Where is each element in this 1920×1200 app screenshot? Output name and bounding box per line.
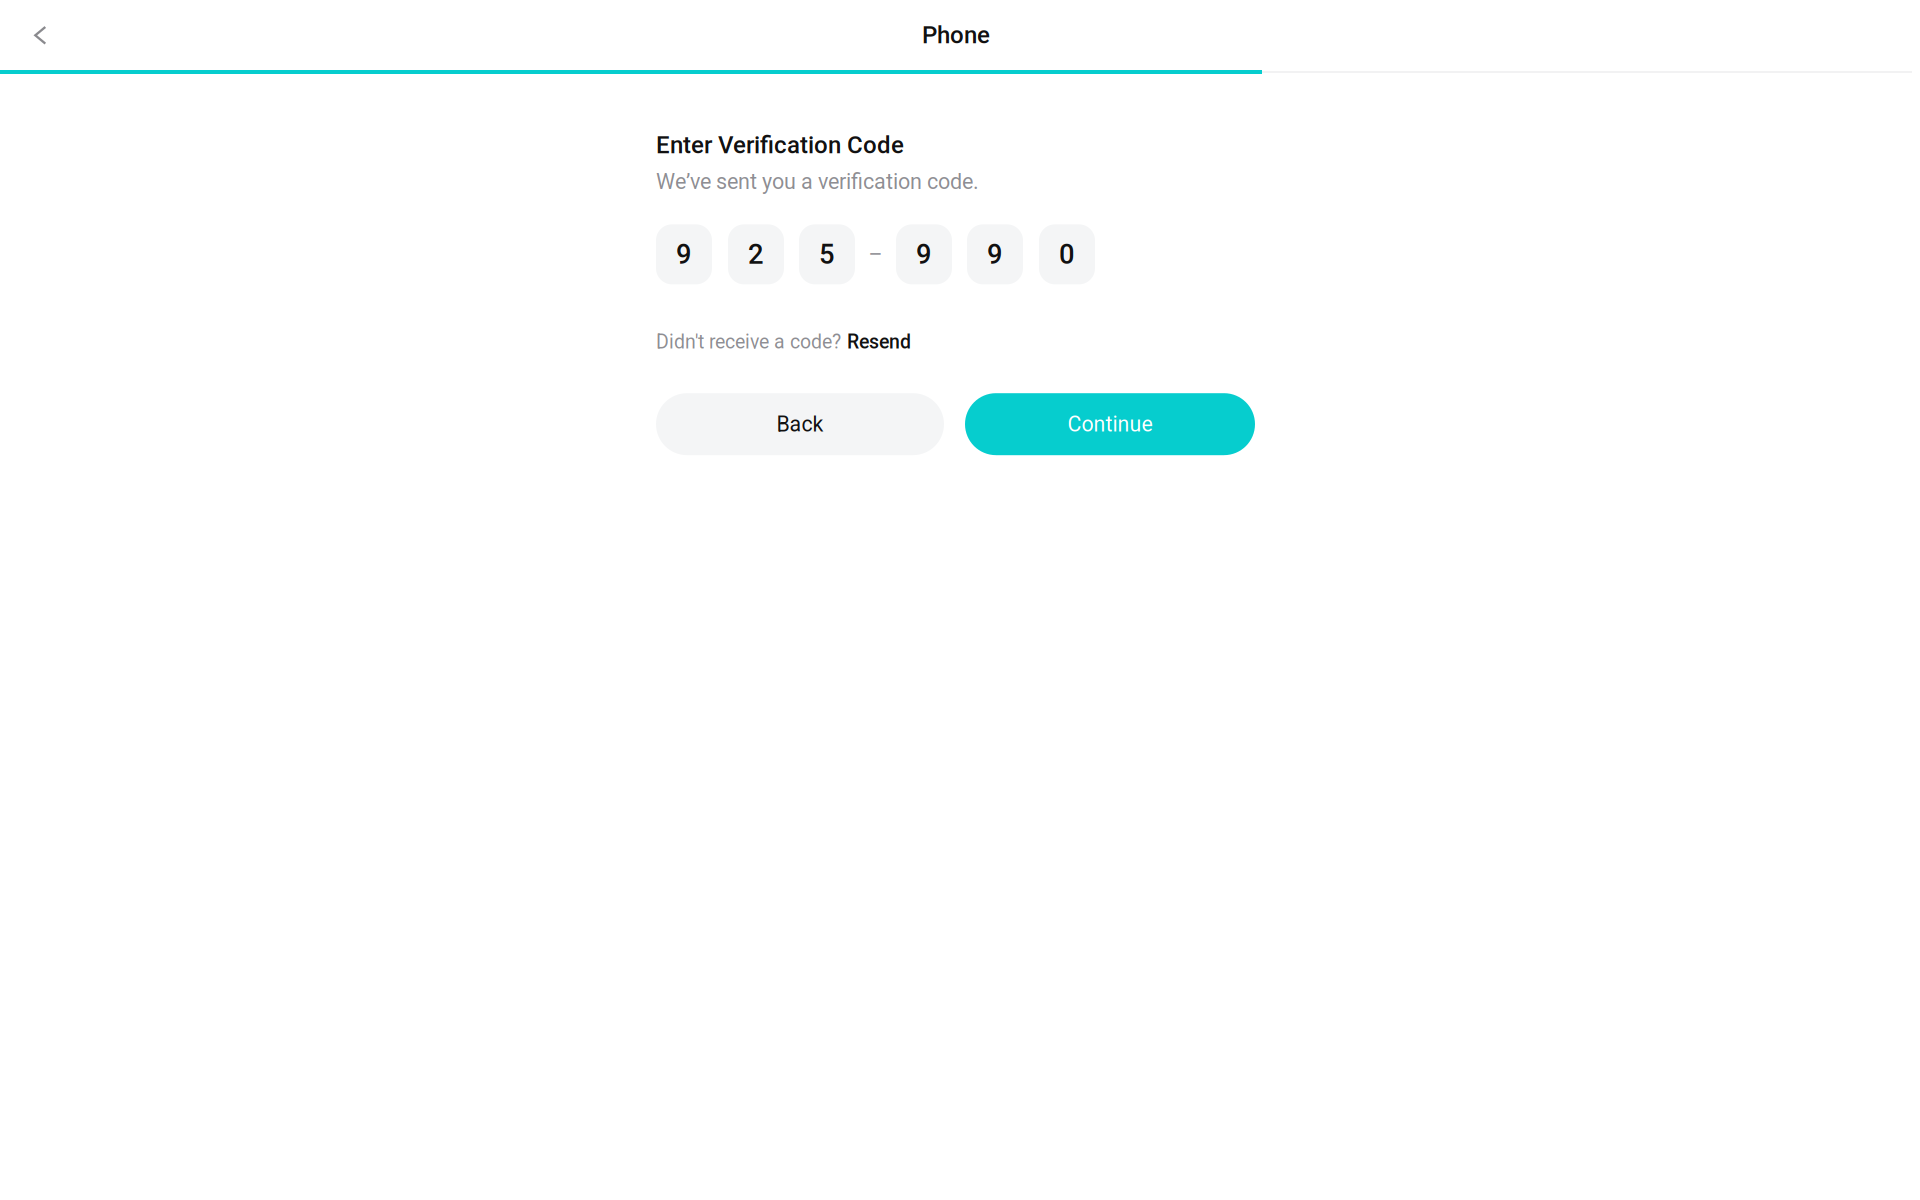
staticText: 0	[1059, 238, 1075, 270]
staticText: Resend	[847, 330, 911, 353]
staticText: 9	[676, 238, 692, 270]
button[interactable]: Continue	[965, 393, 1255, 455]
button[interactable]: Back	[656, 393, 944, 455]
staticText: 9	[987, 238, 1003, 270]
button[interactable]: Resend	[847, 330, 911, 353]
staticText: 9	[916, 238, 932, 270]
staticText: Back	[776, 412, 823, 437]
staticText: Enter Verification Code	[656, 131, 904, 159]
staticText: We’ve sent you a verification code.	[656, 169, 979, 194]
staticText: Continue	[1067, 412, 1152, 437]
button[interactable]: Back	[0, 0, 72, 70]
staticText: Phone	[922, 21, 990, 49]
staticText: –	[868, 242, 882, 267]
staticText: 5	[819, 238, 835, 270]
staticText: 2	[748, 238, 764, 270]
staticText: Didn't receive a code?	[656, 330, 841, 353]
